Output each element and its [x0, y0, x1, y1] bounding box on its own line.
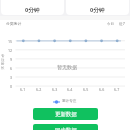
staticText: 6-2 — [36, 87, 42, 92]
staticText: 6-5 — [83, 87, 89, 92]
staticText: 累计专注 — [62, 99, 77, 104]
staticText: 时 — [1, 62, 5, 66]
staticText: 更新数据 — [55, 111, 77, 118]
button[interactable]: 0分钟 — [66, 0, 129, 15]
staticText: 0分钟 — [25, 6, 40, 14]
staticText: 6 — [10, 66, 13, 71]
staticText: 注 — [1, 58, 5, 62]
staticText: 9 — [10, 57, 13, 62]
staticText: 6-7 — [114, 87, 120, 92]
staticText: 3 — [10, 75, 13, 80]
staticText: 今日 — [107, 22, 114, 26]
staticText: 15 — [8, 39, 13, 44]
staticText: 6-4 — [67, 87, 73, 92]
button[interactable]: 同步数据 — [33, 124, 98, 130]
button[interactable]: 更新数据 — [33, 108, 98, 120]
staticText: 专 — [1, 54, 5, 58]
staticText: 0 — [10, 84, 13, 89]
staticText: 6-6 — [99, 87, 105, 92]
staticText: 暂无数据 — [57, 64, 77, 70]
staticText: 长 — [1, 66, 5, 70]
button[interactable]: 今日 — [107, 21, 125, 26]
staticText: 分类统计 — [6, 21, 22, 26]
staticText: 近7 — [119, 21, 125, 26]
staticText: 6-3 — [52, 87, 58, 92]
staticText: 0分钟 — [90, 6, 105, 14]
staticText: 12 — [8, 48, 13, 53]
button[interactable]: 0分钟 — [1, 0, 64, 15]
staticText: 6-1 — [20, 87, 26, 92]
staticText: 同步数据 — [55, 127, 77, 130]
